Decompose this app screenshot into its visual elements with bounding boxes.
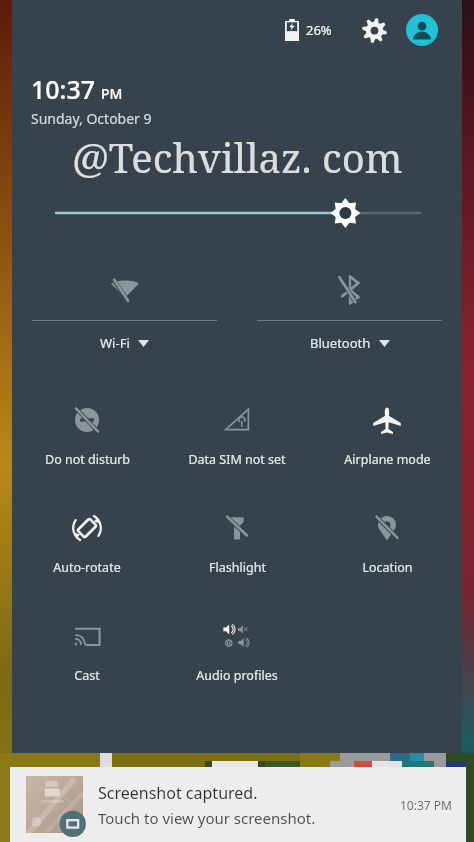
staticText: PM [101, 84, 123, 103]
staticText: Do not disturb [45, 451, 130, 468]
staticText: 10:37 [31, 72, 96, 106]
button[interactable]: Settings [354, 10, 394, 50]
staticText: 10:37 PM [400, 797, 452, 813]
staticText: Audio profiles [196, 667, 278, 684]
button[interactable]: Flashlight [162, 501, 312, 581]
staticText: Touch to view your screenshot. [98, 808, 316, 828]
button[interactable]: Auto-rotate [12, 501, 162, 581]
button[interactable]: Bluetooth [257, 258, 442, 368]
button[interactable]: Do not disturb [12, 393, 162, 473]
button[interactable]: Airplane mode [312, 393, 462, 473]
staticText: Bluetooth [310, 334, 371, 352]
button[interactable]: Screenshot captured. [10, 767, 466, 842]
button[interactable]: Wi-Fi [32, 258, 217, 368]
staticText: Sunday, October 9 [31, 109, 152, 128]
button[interactable]: Audio profiles [162, 609, 312, 689]
staticText: 26% [306, 21, 332, 39]
button[interactable]: Data SIM not set [162, 393, 312, 473]
staticText: Screenshot captured. [98, 782, 258, 804]
button[interactable]: Cast [12, 609, 162, 689]
staticText: @Techvillaz. com [72, 130, 403, 184]
staticText: Wi-Fi [100, 334, 130, 352]
staticText: Flashlight [209, 559, 266, 576]
staticText: Auto-rotate [53, 559, 121, 576]
staticText: Location [362, 559, 413, 576]
button[interactable]: Brightness [44, 190, 430, 236]
button[interactable]: Location [312, 501, 462, 581]
staticText: Data SIM not set [188, 451, 286, 468]
staticText: Airplane mode [344, 451, 431, 468]
button[interactable]: User profile [402, 10, 442, 50]
staticText: Cast [74, 667, 100, 684]
